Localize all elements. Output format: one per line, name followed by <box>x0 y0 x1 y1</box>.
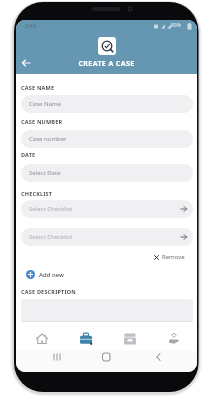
button[interactable] <box>108 326 152 351</box>
staticText: 2:40 <box>25 22 36 29</box>
staticText: Select Checklist <box>29 205 73 213</box>
staticText: CASE NUMBER <box>21 118 63 125</box>
button[interactable] <box>49 351 64 365</box>
staticText: CASE NAME <box>21 84 55 91</box>
button[interactable]: Select Date <box>21 164 193 182</box>
staticText: Remove <box>162 253 185 261</box>
button[interactable]: Select Checklist <box>21 228 193 246</box>
staticText: 80% <box>171 22 181 29</box>
button[interactable] <box>20 326 64 351</box>
staticText: CHECKLIST <box>21 190 53 197</box>
button[interactable]: Select Checklist <box>21 200 193 218</box>
staticText: DATE <box>21 151 36 158</box>
button[interactable] <box>99 351 114 365</box>
button[interactable] <box>152 351 166 365</box>
staticText: Select Checklist <box>29 233 73 241</box>
button[interactable]: Case Name <box>21 95 193 113</box>
button[interactable]: Add new <box>26 270 64 279</box>
staticText: CREATE A CASE <box>16 59 197 69</box>
button[interactable]: Case number <box>21 130 193 148</box>
staticText: Add new <box>39 271 64 279</box>
button[interactable] <box>64 326 108 351</box>
button[interactable] <box>20 57 32 69</box>
staticText: CASE DESCRIPTION <box>21 288 77 295</box>
button[interactable] <box>152 326 196 351</box>
staticText: Case Name <box>29 100 61 108</box>
button[interactable]: Remove <box>154 253 185 261</box>
staticText: Case number <box>29 135 67 143</box>
staticText: Select Date <box>29 169 61 177</box>
